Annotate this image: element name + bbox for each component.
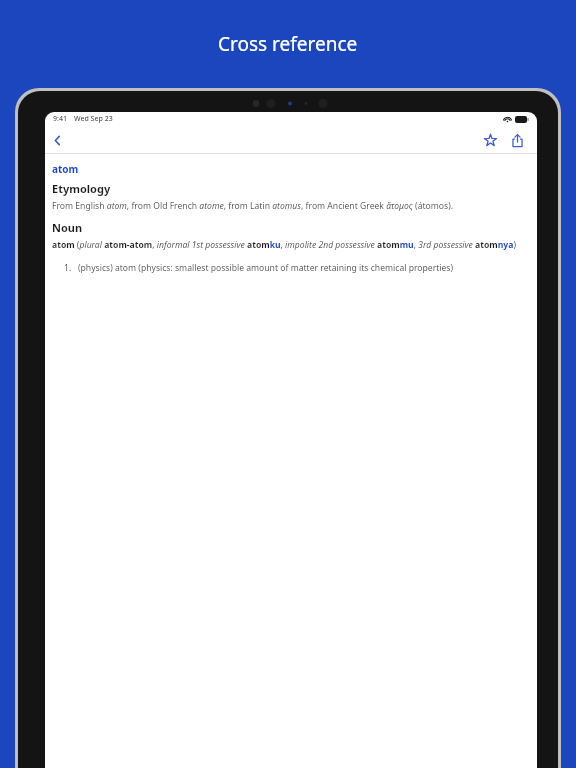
staticText: Etymology — [52, 181, 111, 196]
staticText: Cross reference — [218, 31, 358, 57]
staticText: atom (plural atom-atom, informal 1st pos… — [52, 239, 516, 251]
button[interactable]: atom — [52, 162, 79, 176]
staticText: Wed Sep 23 — [74, 114, 113, 124]
button[interactable]: Back — [46, 129, 68, 151]
button[interactable]: Share — [506, 129, 528, 151]
staticText: 1. — [64, 262, 72, 274]
staticText: (physics) atom (physics: smallest possib… — [78, 262, 454, 274]
button[interactable]: Bookmark — [479, 129, 501, 151]
staticText: From English atom, from Old French atome… — [52, 200, 454, 212]
staticText: Noun — [52, 220, 83, 235]
staticText: atom — [52, 162, 79, 176]
staticText: 9:41 — [53, 114, 67, 124]
